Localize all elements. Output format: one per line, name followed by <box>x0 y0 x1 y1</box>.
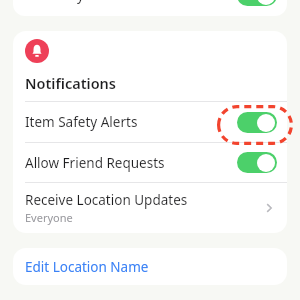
staticText: Share My Location <box>25 0 142 4</box>
other: Open <box>261 200 277 216</box>
staticText: Allow Friend Requests <box>25 154 165 172</box>
button[interactable]: Toggle <box>237 152 277 173</box>
button[interactable]: Share My Location <box>13 0 287 16</box>
staticText: Everyone <box>25 210 73 225</box>
button[interactable]: Edit Location Name <box>13 248 287 285</box>
staticText: Item Safety Alerts <box>25 113 138 131</box>
button[interactable]: Allow Friend Requests <box>13 143 287 182</box>
button[interactable]: Receive Location Updates <box>13 183 287 233</box>
staticText: Notifications <box>25 73 117 93</box>
staticText: Edit Location Name <box>25 258 149 276</box>
staticText: Receive Location Updates <box>25 191 188 209</box>
button[interactable]: Item Safety Alerts <box>13 102 287 142</box>
button[interactable]: Toggle <box>237 112 277 133</box>
button[interactable]: Toggle <box>237 0 277 6</box>
